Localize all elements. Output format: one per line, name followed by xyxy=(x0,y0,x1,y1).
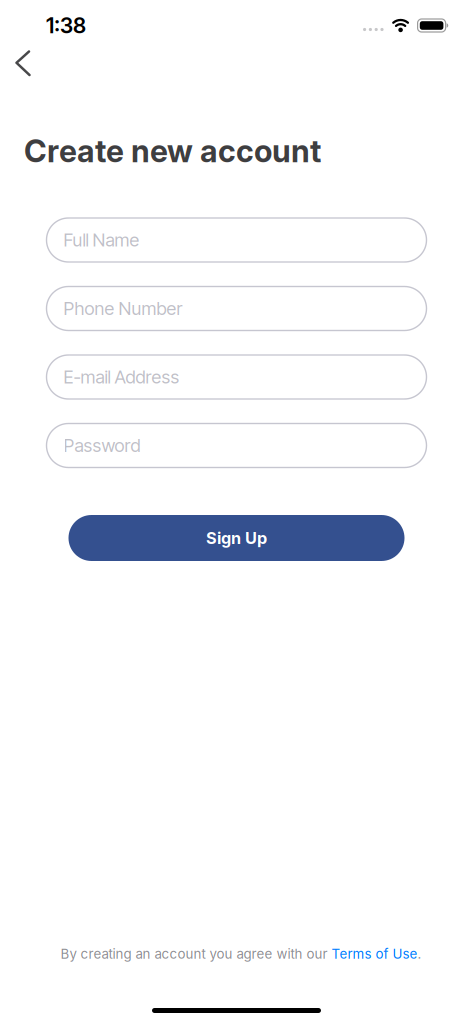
staticText: . xyxy=(417,946,421,962)
staticText: Phone Number xyxy=(63,298,182,319)
staticText: By creating an account you agree with ou… xyxy=(60,946,331,962)
button[interactable]: Password xyxy=(46,423,426,467)
button[interactable]: Phone Number xyxy=(46,286,426,330)
staticText: Full Name xyxy=(63,229,139,251)
staticText: E-mail Address xyxy=(63,366,179,388)
staticText: 1:38 xyxy=(46,13,86,38)
staticText: Create new account xyxy=(24,132,321,170)
staticText: Password xyxy=(63,435,140,456)
button[interactable]: Sign Up xyxy=(68,515,404,561)
button[interactable]: E-mail Address xyxy=(46,355,426,399)
button[interactable]: Terms of Use xyxy=(331,946,417,962)
button[interactable]: Back xyxy=(0,51,40,75)
staticText: Sign Up xyxy=(206,528,267,548)
staticText: Terms of Use xyxy=(331,946,417,962)
button[interactable]: Full Name xyxy=(46,218,426,262)
